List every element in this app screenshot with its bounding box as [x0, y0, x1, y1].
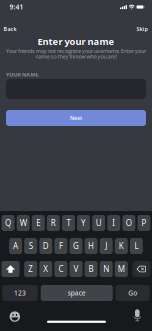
button[interactable]: F — [54, 238, 67, 254]
staticText: F — [59, 241, 63, 251]
staticText: T — [66, 218, 70, 228]
button[interactable]: I — [107, 215, 120, 231]
button[interactable]: space — [41, 285, 113, 301]
button[interactable]: P — [137, 215, 150, 231]
staticText: X — [43, 264, 48, 274]
staticText: L — [134, 241, 138, 251]
button[interactable]: N — [100, 261, 113, 277]
staticText: 9:41 — [9, 3, 23, 11]
button[interactable]: Emoji — [10, 311, 20, 322]
staticText: S — [29, 241, 33, 251]
button[interactable]: 123 — [2, 285, 38, 301]
staticText: O — [126, 218, 132, 228]
button[interactable]: V — [69, 261, 82, 277]
staticText: V — [73, 264, 78, 274]
staticText: Q — [5, 218, 11, 228]
staticText: space — [68, 289, 86, 297]
button[interactable]: Z — [24, 261, 37, 277]
button[interactable]: C — [54, 261, 67, 277]
staticText: W — [20, 218, 27, 228]
staticText: U — [96, 218, 102, 228]
button[interactable]: M — [115, 261, 128, 277]
button[interactable]: Y — [77, 215, 90, 231]
button[interactable]: O — [122, 215, 135, 231]
button[interactable]: Shift — [1, 261, 19, 277]
staticText: Go — [128, 289, 137, 297]
button[interactable]: Skip — [136, 25, 147, 33]
staticText: D — [43, 241, 49, 251]
button[interactable]: A — [9, 238, 22, 254]
staticText: B — [89, 264, 94, 274]
staticText: R — [51, 218, 56, 228]
button[interactable]: W — [17, 215, 30, 231]
staticText: E — [36, 218, 40, 228]
button[interactable]: Dictate — [133, 308, 142, 321]
button[interactable]: B — [85, 261, 98, 277]
staticText: Y — [81, 218, 86, 228]
button[interactable]: R — [47, 215, 60, 231]
staticText: Next — [70, 114, 82, 122]
button[interactable]: G — [69, 238, 82, 254]
staticText: A — [13, 241, 18, 251]
staticText: J — [105, 241, 107, 251]
staticText: YOUR NAME — [6, 71, 39, 78]
staticText: K — [119, 241, 124, 251]
staticText: Your friends may not recognize your user… — [6, 47, 146, 55]
button[interactable]: Next — [6, 110, 146, 126]
button[interactable]: L — [130, 238, 143, 254]
button[interactable]: H — [85, 238, 98, 254]
button[interactable]: T — [62, 215, 75, 231]
button[interactable]: J — [100, 238, 113, 254]
button[interactable]: X — [39, 261, 52, 277]
staticText: Enter your name — [37, 35, 114, 48]
button[interactable]: S — [24, 238, 37, 254]
staticText: I — [112, 218, 115, 228]
staticText: N — [103, 264, 109, 274]
staticText: name so they'll know who you are! — [35, 53, 116, 60]
button[interactable]: Delete — [132, 261, 150, 277]
button[interactable]: Q — [1, 215, 14, 231]
staticText: M — [118, 264, 125, 274]
button[interactable]: Go — [116, 285, 150, 301]
staticText: Skip — [136, 25, 147, 33]
staticText: G — [73, 241, 79, 251]
button[interactable]: E — [32, 215, 45, 231]
staticText: C — [58, 264, 63, 274]
staticText: Z — [28, 264, 33, 274]
staticText: P — [141, 218, 146, 228]
button[interactable]: D — [39, 238, 52, 254]
button[interactable]: K — [115, 238, 128, 254]
button[interactable]: U — [92, 215, 105, 231]
staticText: H — [88, 241, 94, 251]
staticText: 123 — [14, 289, 26, 297]
button[interactable]: Back — [3, 25, 16, 33]
staticText: Back — [3, 25, 16, 33]
